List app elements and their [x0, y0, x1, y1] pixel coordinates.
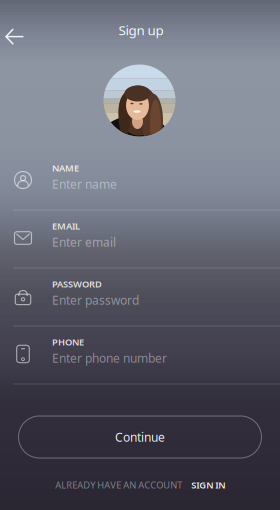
button[interactable]: Back [0, 17, 38, 56]
staticText: EMAIL [52, 220, 80, 232]
staticText: PHONE [52, 336, 84, 348]
staticText: Enter name [52, 176, 117, 192]
staticText: Enter password [52, 292, 139, 308]
button[interactable]: EMAIL [0, 210, 280, 268]
button[interactable]: NAME [0, 152, 280, 210]
staticText: NAME [52, 162, 79, 174]
button[interactable]: ALREADY HAVE AN ACCOUNT [0, 477, 280, 493]
staticText: ALREADY HAVE AN ACCOUNT [55, 479, 182, 491]
staticText: Continue [115, 429, 165, 445]
staticText: Enter phone number [52, 350, 167, 366]
staticText: Sign up [118, 21, 163, 39]
button[interactable]: Continue [18, 416, 261, 458]
button[interactable]: PHONE [0, 326, 280, 384]
staticText: Enter email [52, 234, 116, 250]
staticText: PASSWORD [52, 278, 102, 290]
button[interactable]: PASSWORD [0, 268, 280, 326]
staticText: SIGN IN [191, 479, 225, 491]
